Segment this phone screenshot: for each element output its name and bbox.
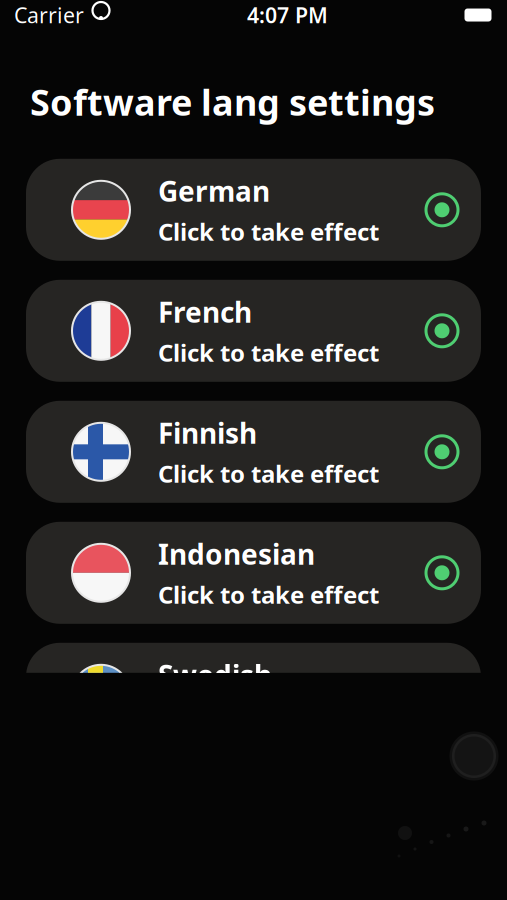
staticText: Click to take effect (158, 215, 379, 247)
staticText: Carrier (14, 1, 84, 29)
staticText: Click to take effect (158, 578, 379, 610)
staticText: 4:07 PM (247, 1, 328, 29)
button[interactable]: Swedish (26, 643, 481, 745)
staticText: Click to take effect (158, 336, 379, 368)
staticText: German (158, 172, 270, 209)
staticText: Swedish (158, 656, 272, 693)
button[interactable]: Finnish (26, 401, 481, 503)
button[interactable]: German (26, 159, 481, 261)
staticText: Finnish (158, 414, 257, 451)
staticText: Software lang settings (30, 78, 435, 126)
staticText: Indonesian (158, 535, 315, 572)
staticText: Click to take effect (158, 457, 379, 489)
staticText: French (158, 293, 252, 330)
button[interactable]: French (26, 280, 481, 382)
button[interactable]: Indonesian (26, 522, 481, 624)
